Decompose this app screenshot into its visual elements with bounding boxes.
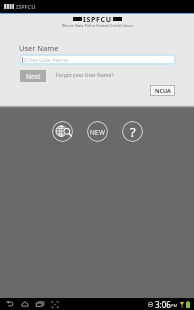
staticText: NCUA [155,87,171,94]
button[interactable]: Home [17,298,32,310]
button[interactable]: Forgot your User Name? [56,72,114,79]
button[interactable]: Next [20,70,46,82]
staticText: 3:06 [155,299,171,310]
button[interactable]: NCUA [150,85,175,96]
button[interactable]: Enter User Name [19,54,176,65]
staticText: User Name [19,43,59,53]
staticText: NEW [90,128,106,137]
staticText: Enter User Name [24,56,69,63]
staticText: ISPFCU [16,3,36,10]
staticText: ? [130,123,136,141]
button[interactable]: What's new [87,121,108,142]
staticText: Next [26,72,41,81]
staticText: PM [171,303,178,308]
button[interactable]: Screenshot [47,298,62,310]
button[interactable]: Back [2,298,17,310]
button[interactable]: Help [122,121,143,142]
button[interactable]: Recent apps [32,298,47,310]
staticText: ISPFCU [83,15,112,22]
staticText: Illinois State Police Federal Credit Uni… [62,23,133,28]
button[interactable]: Find a branch [52,121,73,142]
